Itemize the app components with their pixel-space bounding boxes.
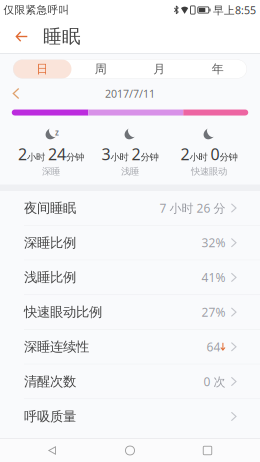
staticText: 浅睡比例 bbox=[24, 269, 76, 286]
staticText: 深睡比例 bbox=[24, 234, 76, 251]
staticText: 快速眼动比例 bbox=[24, 304, 102, 320]
staticText: z bbox=[55, 127, 59, 138]
staticText: 2 bbox=[180, 143, 189, 165]
staticText: 睡眠 bbox=[43, 25, 81, 48]
staticText: 月 bbox=[153, 62, 165, 76]
button[interactable]: 浅睡比例 bbox=[0, 260, 260, 295]
button[interactable]: 深睡连续性 bbox=[0, 330, 260, 364]
staticText: 0 次 bbox=[203, 373, 225, 389]
staticText: 24 bbox=[48, 143, 66, 165]
staticText: 分钟 bbox=[66, 151, 84, 163]
staticText: 0 bbox=[210, 143, 219, 165]
button[interactable]: 返回 bbox=[27, 439, 77, 462]
staticText: 仅限紧急呼叫 bbox=[3, 3, 69, 16]
staticText: 小时 bbox=[110, 151, 128, 163]
staticText: 快速眼动 bbox=[191, 166, 227, 177]
staticText: 深睡连续性 bbox=[24, 339, 89, 355]
button[interactable]: 夜间睡眠 bbox=[0, 191, 260, 226]
staticText: 小时 bbox=[27, 151, 45, 163]
button[interactable]: 深睡比例 bbox=[0, 226, 260, 260]
staticText: 分钟 bbox=[219, 151, 237, 163]
staticText: 27% bbox=[201, 304, 225, 320]
staticText: 2017/7/11 bbox=[105, 86, 155, 101]
staticText: 年 bbox=[212, 62, 224, 76]
staticText: 周 bbox=[95, 62, 107, 76]
button[interactable]: 周 bbox=[71, 59, 130, 78]
staticText: 3 bbox=[101, 143, 110, 165]
staticText: 32% bbox=[201, 235, 225, 251]
staticText: 41% bbox=[201, 269, 225, 285]
staticText: 小时 bbox=[189, 151, 207, 163]
staticText: 浅睡 bbox=[121, 166, 139, 177]
staticText: 日 bbox=[36, 62, 48, 76]
staticText: 分钟 bbox=[140, 151, 158, 163]
staticText: 呼吸质量 bbox=[24, 408, 76, 425]
staticText: 深睡 bbox=[42, 166, 60, 177]
staticText: 2 bbox=[131, 143, 140, 165]
staticText: 早上8:55 bbox=[213, 3, 256, 17]
button[interactable]: 年 bbox=[188, 59, 247, 78]
staticText: 2 bbox=[18, 143, 27, 165]
button[interactable]: 返回 bbox=[6, 20, 38, 52]
button[interactable]: 呼吸质量 bbox=[0, 399, 260, 434]
button[interactable]: 前一天 bbox=[6, 84, 26, 102]
button[interactable]: 日 bbox=[13, 59, 71, 78]
button[interactable]: 最近任务 bbox=[182, 439, 232, 462]
button[interactable]: 快速眼动比例 bbox=[0, 295, 260, 330]
button[interactable]: 主屏幕 bbox=[105, 439, 155, 462]
staticText: 夜间睡眠 bbox=[24, 200, 76, 216]
button[interactable]: 月 bbox=[130, 59, 188, 78]
button[interactable]: 清醒次数 bbox=[0, 364, 260, 399]
staticText: 清醒次数 bbox=[24, 373, 76, 390]
staticText: 64 bbox=[206, 339, 220, 355]
staticText: 7 小时 26 分 bbox=[159, 200, 225, 216]
